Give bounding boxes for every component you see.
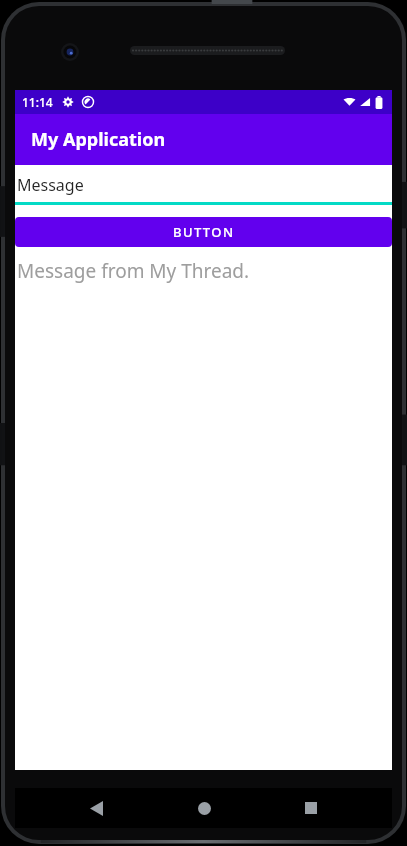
staticText: My Application [31, 127, 166, 152]
button[interactable]: Recent apps [285, 788, 337, 828]
button[interactable]: Home [178, 788, 230, 828]
button[interactable]: Message [15, 165, 392, 205]
staticText: Message [17, 174, 84, 196]
button[interactable]: Back [70, 788, 122, 828]
button[interactable]: BUTTON [15, 217, 392, 247]
staticText: 11:14 [22, 94, 53, 110]
staticText: Message from My Thread. [17, 258, 250, 284]
staticText: BUTTON [173, 223, 235, 241]
